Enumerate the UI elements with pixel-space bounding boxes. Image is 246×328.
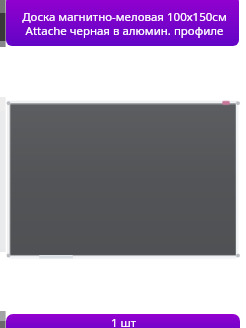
staticText: 1 шт [111, 315, 137, 328]
button[interactable]: 1 шт [6, 314, 240, 328]
button[interactable]: Доска магнитно-меловая 100х150см Attache… [6, 0, 239, 46]
staticText: Доска магнитно-меловая 100х150см Attache… [22, 10, 227, 38]
